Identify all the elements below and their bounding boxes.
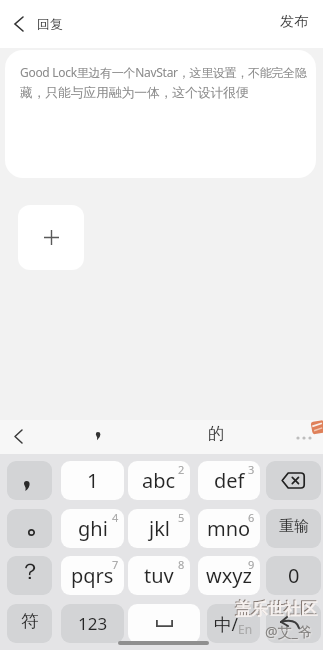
button[interactable] xyxy=(128,604,200,643)
staticText: 发布 xyxy=(280,13,308,31)
staticText: 中/ xyxy=(214,612,239,636)
staticText: 4 xyxy=(112,510,119,525)
staticText: tuv xyxy=(144,562,174,589)
staticText: mno xyxy=(207,515,251,542)
button[interactable]: 的 xyxy=(204,417,228,451)
staticText: 8 xyxy=(178,557,185,572)
staticText: 7 xyxy=(112,557,119,572)
staticText: 2 xyxy=(178,462,185,477)
staticText: wxyz xyxy=(206,562,252,589)
button[interactable]: ？ xyxy=(7,556,52,595)
staticText: En xyxy=(238,621,253,637)
staticText: 6 xyxy=(248,510,255,525)
staticText: 的 xyxy=(208,424,224,444)
button[interactable] xyxy=(84,426,110,450)
button[interactable]: 重输 xyxy=(266,509,321,548)
staticText: 盖乐世社区 xyxy=(235,599,318,620)
staticText: 1 xyxy=(87,467,99,494)
button[interactable] xyxy=(18,205,84,270)
button[interactable] xyxy=(7,509,52,548)
staticText: 0 xyxy=(288,562,300,589)
staticText: @艾_爷 xyxy=(265,622,312,641)
button[interactable]: 1 xyxy=(61,461,124,500)
staticText: jkl xyxy=(149,515,170,542)
staticText: 符 xyxy=(21,610,39,632)
button[interactable]: mno xyxy=(198,509,260,548)
button[interactable]: ghi xyxy=(61,509,124,548)
button[interactable]: pqrs xyxy=(61,556,124,595)
button[interactable]: abc xyxy=(128,461,190,500)
staticText: Good Lock里边有一个NavStar，这里设置，不能完全隐 xyxy=(20,64,307,80)
staticText: 藏，只能与应用融为一体，这个设计很便 xyxy=(20,85,249,101)
button[interactable]: 回复 xyxy=(0,16,63,32)
staticText: 回复 xyxy=(37,16,63,32)
button[interactable] xyxy=(14,430,22,443)
staticText: 盖乐世社区 xyxy=(234,598,317,619)
button[interactable]: Good Lock里边有一个NavStar，这里设置，不能完全隐 xyxy=(5,50,316,178)
button[interactable]: 发布 xyxy=(280,13,308,31)
button[interactable]: jkl xyxy=(128,509,190,548)
button[interactable]: 中/ xyxy=(207,604,260,643)
button[interactable]: 符 xyxy=(7,604,52,643)
staticText: abc xyxy=(142,467,176,494)
staticText: def xyxy=(214,467,245,494)
staticText: 123 xyxy=(78,612,108,635)
staticText: 3 xyxy=(248,462,255,477)
button[interactable]: 123 xyxy=(61,604,124,643)
staticText: ？ xyxy=(19,558,41,586)
button[interactable] xyxy=(266,604,321,643)
button[interactable] xyxy=(266,461,321,500)
staticText: 5 xyxy=(178,510,185,525)
staticText: ghi xyxy=(78,515,108,542)
button[interactable]: tuv xyxy=(128,556,190,595)
button[interactable]: wxyz xyxy=(198,556,260,595)
button[interactable]: 0 xyxy=(266,556,321,595)
staticText: 重输 xyxy=(279,517,309,536)
staticText: pqrs xyxy=(71,562,114,589)
staticText: 9 xyxy=(248,557,255,572)
button[interactable] xyxy=(7,461,52,500)
button[interactable]: def xyxy=(198,461,260,500)
